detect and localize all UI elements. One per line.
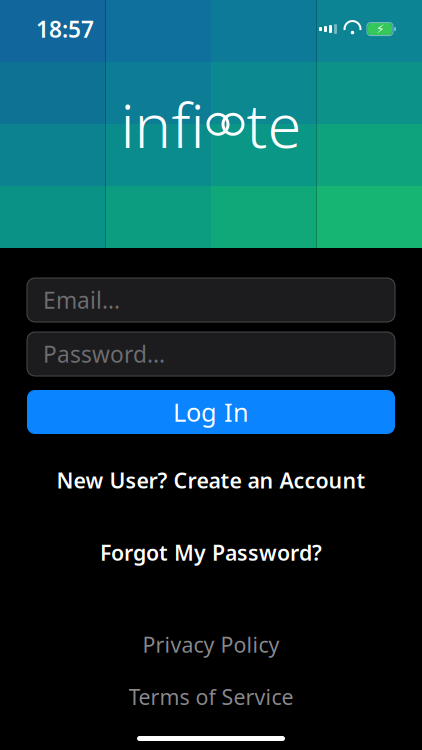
staticText: Privacy Policy — [142, 630, 279, 659]
button[interactable]: New User? Create an Account — [27, 458, 395, 502]
staticText: te — [246, 84, 301, 165]
staticText: Terms of Service — [128, 683, 293, 711]
staticText: Email... — [43, 285, 120, 315]
staticText: 18:57 — [36, 14, 94, 44]
button[interactable]: Password... — [27, 332, 395, 376]
staticText: Password... — [43, 339, 165, 369]
button[interactable]: Log In — [27, 390, 395, 434]
button[interactable]: Terms of Service — [27, 678, 395, 716]
staticText: New User? Create an Account — [56, 466, 365, 494]
staticText: Forgot My Password? — [100, 538, 322, 567]
staticText: ⚡︎ — [376, 22, 384, 36]
button[interactable]: Forgot My Password? — [27, 530, 395, 575]
staticText: infi — [120, 84, 204, 165]
button[interactable]: Email... — [27, 278, 395, 322]
staticText: Log In — [173, 395, 249, 429]
button[interactable]: Privacy Policy — [27, 625, 395, 664]
